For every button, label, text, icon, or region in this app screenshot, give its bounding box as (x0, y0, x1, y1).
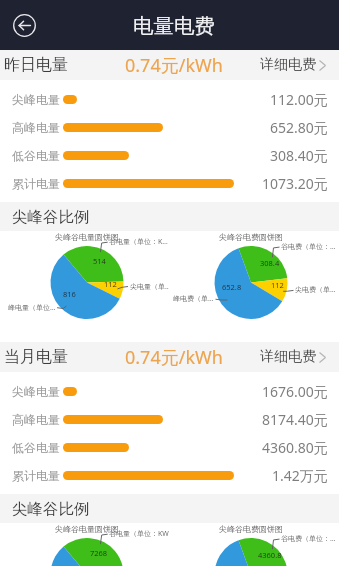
staticText: 308.40元 (270, 146, 328, 165)
button[interactable]: 尖峰电量 (0, 377, 339, 405)
staticText: 514 (93, 256, 106, 266)
staticText: 昨日电量 (4, 55, 68, 75)
staticText: 谷电量（单位：KW… (109, 529, 169, 539)
staticText: 尖峰电量 (12, 92, 60, 107)
staticText: 谷电费（单位：… (281, 534, 336, 544)
button[interactable]: 低谷电量 (0, 141, 339, 169)
staticText: 8174.40元 (262, 410, 328, 429)
button[interactable]: 累计电量 (0, 169, 339, 197)
button[interactable]: 低谷电量 (0, 433, 339, 461)
staticText: 详细电费 (260, 348, 316, 366)
staticText: 尖峰电量 (12, 384, 60, 399)
staticText: 4360.8 (258, 550, 282, 560)
staticText: 累计电量 (12, 468, 60, 483)
staticText: 308.4 (260, 258, 280, 268)
staticText: 电量电费 (133, 13, 215, 39)
button[interactable]: 昨日电量 (0, 50, 339, 80)
staticText: 1.42万元 (272, 466, 328, 485)
staticText: 谷电量（单位：K… (109, 237, 168, 247)
staticText: 高峰电量 (12, 412, 60, 427)
staticText: 112.00元 (270, 90, 328, 109)
staticText: 1676.00元 (262, 382, 328, 401)
staticText: 详细电费 (260, 56, 316, 74)
staticText: 尖峰谷电量圆饼图 (55, 524, 119, 534)
staticText: 尖峰谷电量圆饼图 (55, 232, 119, 242)
staticText: 112 (271, 280, 284, 290)
staticText: 尖峰谷比例 (12, 207, 90, 227)
staticText: 低谷电量 (12, 148, 60, 163)
staticText: 816 (63, 289, 76, 299)
staticText: 尖电费（单… (295, 285, 336, 295)
staticText: 当月电量 (4, 347, 68, 367)
button[interactable]: 尖峰谷比例 (0, 494, 339, 523)
button[interactable]: 高峰电量 (0, 113, 339, 141)
staticText: 652.80元 (270, 118, 328, 137)
staticText: 尖峰谷电费圆饼图 (219, 232, 283, 242)
button[interactable]: 累计电量 (0, 461, 339, 489)
staticText: 峰电量（单位… (8, 303, 56, 313)
button[interactable]: 尖峰谷比例 (0, 202, 339, 231)
staticText: 峰电费（单… (173, 294, 214, 304)
staticText: 0.74元/kWh (125, 345, 223, 370)
staticText: 0.74元/kWh (125, 53, 223, 78)
button[interactable]: 高峰电量 (0, 405, 339, 433)
staticText: 112 (104, 279, 117, 289)
staticText: 累计电量 (12, 176, 60, 191)
staticText: 7268 (90, 548, 108, 558)
button[interactable]: 返回 (13, 14, 36, 37)
staticText: 652.8 (222, 282, 242, 292)
staticText: 低谷电量 (12, 440, 60, 455)
staticText: 尖电量（单… (130, 282, 169, 292)
staticText: 高峰电量 (12, 120, 60, 135)
staticText: 尖峰谷比例 (12, 499, 90, 519)
staticText: 4360.80元 (262, 438, 328, 457)
staticText: 谷电费（单位：… (281, 242, 336, 252)
button[interactable]: 尖峰电量 (0, 85, 339, 113)
staticText: 尖峰谷电费圆饼图 (219, 524, 283, 534)
staticText: 1073.20元 (262, 174, 328, 193)
button[interactable]: 当月电量 (0, 342, 339, 372)
